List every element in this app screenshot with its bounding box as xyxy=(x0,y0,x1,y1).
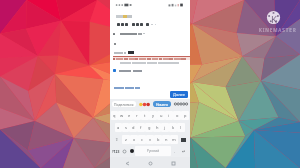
staticText: j xyxy=(164,125,166,130)
button[interactable]: Voice input xyxy=(128,145,135,157)
button[interactable]: m xyxy=(170,135,178,144)
staticText: p xyxy=(184,113,187,118)
button[interactable]: g xyxy=(145,123,153,132)
button[interactable]: Backspace xyxy=(178,135,189,144)
button[interactable]: j xyxy=(161,123,169,132)
staticText: k xyxy=(172,125,175,130)
staticText: f xyxy=(140,125,142,130)
staticText: t xyxy=(144,113,146,118)
button[interactable]: n xyxy=(162,135,170,144)
button[interactable]: o xyxy=(173,111,181,120)
button[interactable]: w xyxy=(118,111,125,120)
staticText: c xyxy=(141,137,143,142)
staticText: r xyxy=(136,113,138,118)
staticText: o xyxy=(176,113,179,118)
button[interactable]: h xyxy=(153,123,161,132)
staticText: ↵ xyxy=(182,149,186,154)
button[interactable]: p xyxy=(181,111,189,120)
button[interactable]: d xyxy=(129,123,137,132)
staticText: s xyxy=(125,125,127,130)
button[interactable]: Home xyxy=(144,158,156,168)
staticText: Ничего xyxy=(156,102,168,107)
button[interactable]: Поделиться xyxy=(114,101,134,107)
button[interactable]: Recents xyxy=(167,158,179,168)
button[interactable]: k xyxy=(169,123,177,132)
staticText: K xyxy=(271,13,277,26)
staticText: Поделиться xyxy=(114,102,134,107)
staticText: m xyxy=(172,137,176,142)
staticText: x xyxy=(133,137,136,142)
button[interactable]: ?123 xyxy=(111,145,121,157)
staticText: Русский xyxy=(147,149,160,153)
staticText: . xyxy=(174,149,176,154)
button[interactable]: i xyxy=(165,111,173,120)
button[interactable] xyxy=(113,68,158,73)
staticText: q xyxy=(113,113,116,118)
button[interactable]: y xyxy=(149,111,157,120)
button[interactable]: c xyxy=(138,135,146,144)
button[interactable] xyxy=(113,86,141,90)
button[interactable]: x xyxy=(130,135,138,144)
button[interactable]: u xyxy=(157,111,165,120)
button[interactable]: Далее xyxy=(170,91,188,98)
staticText: n xyxy=(165,137,168,142)
staticText: g xyxy=(148,125,151,130)
button[interactable]: a xyxy=(115,123,122,132)
button[interactable]: f xyxy=(137,123,145,132)
button[interactable]: e xyxy=(125,111,133,120)
staticText: w xyxy=(120,113,124,118)
staticText: v xyxy=(149,137,152,142)
button[interactable]: q xyxy=(111,111,118,120)
button[interactable]: v xyxy=(146,135,154,144)
button[interactable]: z xyxy=(122,135,130,144)
staticText: a xyxy=(117,125,120,130)
button[interactable]: l xyxy=(177,123,185,132)
staticText: KINEMASTER xyxy=(259,27,297,33)
staticText: ⇧ xyxy=(115,137,119,142)
button[interactable]: Ничего xyxy=(156,101,168,107)
staticText: d xyxy=(132,125,135,130)
staticText: h xyxy=(156,125,159,130)
staticText: l xyxy=(180,125,182,130)
staticText: e xyxy=(128,113,131,118)
button[interactable]: Emoji xyxy=(121,145,128,157)
button[interactable]: b xyxy=(154,135,162,144)
staticText: b xyxy=(157,137,160,142)
button[interactable]: Enter xyxy=(178,145,189,157)
staticText: y xyxy=(152,113,155,118)
staticText: Далее xyxy=(173,92,185,97)
staticText: i xyxy=(168,113,170,118)
button[interactable]: Shift xyxy=(111,135,122,144)
button[interactable]: Русский xyxy=(135,146,171,156)
button[interactable]: t xyxy=(141,111,149,120)
button[interactable]: r xyxy=(133,111,141,120)
button[interactable]: Back xyxy=(121,158,133,168)
staticText: ?123 xyxy=(112,149,120,154)
button[interactable]: s xyxy=(122,123,129,132)
staticText: u xyxy=(160,113,163,118)
staticText: z xyxy=(125,137,127,142)
